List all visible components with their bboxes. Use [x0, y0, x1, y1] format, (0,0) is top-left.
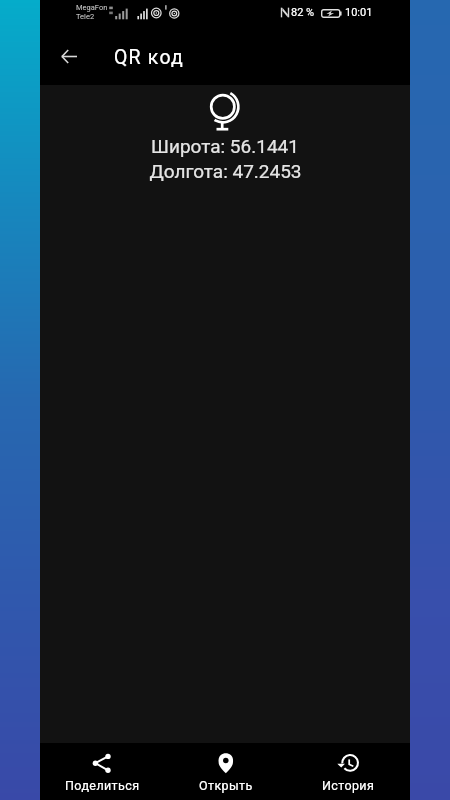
button[interactable]: Поделиться [40, 743, 164, 800]
staticText: QR код [114, 46, 185, 69]
staticText: MegaFon [76, 3, 108, 12]
button[interactable]: Back [47, 34, 91, 78]
staticText: Широта: 56.1441 [151, 135, 299, 157]
staticText: История [322, 778, 375, 793]
staticText: Поделиться [65, 778, 140, 793]
staticText: 10:01 [345, 6, 373, 19]
button[interactable]: История [287, 743, 410, 800]
staticText: Открыть [199, 778, 253, 793]
staticText: 82 % [291, 6, 315, 19]
staticText: Tele2 [76, 12, 95, 21]
button[interactable]: Открыть [164, 743, 287, 800]
staticText: Долгота: 47.2453 [149, 160, 302, 182]
